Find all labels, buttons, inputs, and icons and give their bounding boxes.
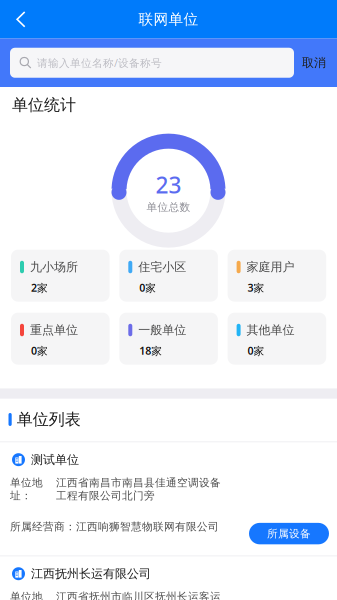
- button[interactable]: 测试单位: [0, 442, 337, 555]
- staticText: 0: [139, 280, 145, 295]
- button[interactable]: 返回: [0, 0, 42, 38]
- staticText: 家: [151, 344, 162, 358]
- button[interactable]: 其他单位: [228, 313, 326, 365]
- staticText: 家: [145, 281, 156, 295]
- staticText: 家: [37, 344, 48, 358]
- staticText: 2: [31, 280, 37, 295]
- staticText: 江西省南昌市南昌县佳通空调设备: [56, 476, 221, 489]
- staticText: 请输入单位名称/设备称号: [37, 56, 162, 70]
- button[interactable]: 一般单位: [119, 313, 218, 365]
- staticText: 九小场所: [30, 260, 78, 274]
- staticText: 联网单位: [138, 10, 198, 28]
- staticText: 住宅小区: [138, 260, 186, 274]
- staticText: 江西省抚州市临川区抚州长运客运: [56, 590, 221, 600]
- staticText: 单位地: [10, 590, 43, 600]
- staticText: 家: [254, 281, 265, 295]
- staticText: 23: [155, 170, 181, 200]
- staticText: 单位总数: [146, 201, 190, 214]
- staticText: 一般单位: [138, 323, 186, 337]
- staticText: 家: [254, 344, 265, 358]
- staticText: 取消: [302, 55, 326, 70]
- button[interactable]: 取消: [294, 48, 334, 78]
- staticText: 其他单位: [247, 323, 295, 337]
- staticText: 所属设备: [267, 527, 311, 540]
- staticText: 址：: [10, 489, 32, 502]
- staticText: 江西抚州长运有限公司: [31, 566, 151, 581]
- staticText: 单位列表: [17, 410, 81, 429]
- staticText: 家庭用户: [247, 260, 295, 274]
- staticText: 0: [248, 343, 254, 358]
- staticText: 0: [31, 343, 37, 358]
- staticText: 3: [248, 280, 254, 295]
- button[interactable]: 家庭用户: [228, 250, 326, 302]
- button[interactable]: 所属设备: [249, 523, 329, 544]
- staticText: 重点单位: [30, 323, 78, 337]
- staticText: 单位地: [10, 476, 43, 489]
- staticText: 工程有限公司北门旁: [56, 489, 155, 502]
- staticText: 单位统计: [12, 95, 76, 115]
- staticText: 所属经营商：江西响狮智慧物联网有限公司: [10, 520, 219, 533]
- staticText: 18: [139, 343, 151, 358]
- button[interactable]: 九小场所: [11, 250, 110, 302]
- button[interactable]: 住宅小区: [119, 250, 218, 302]
- button[interactable]: 重点单位: [11, 313, 110, 365]
- staticText: 家: [37, 281, 48, 295]
- staticText: 测试单位: [31, 452, 79, 467]
- button[interactable]: 江西抚州长运有限公司: [0, 556, 337, 600]
